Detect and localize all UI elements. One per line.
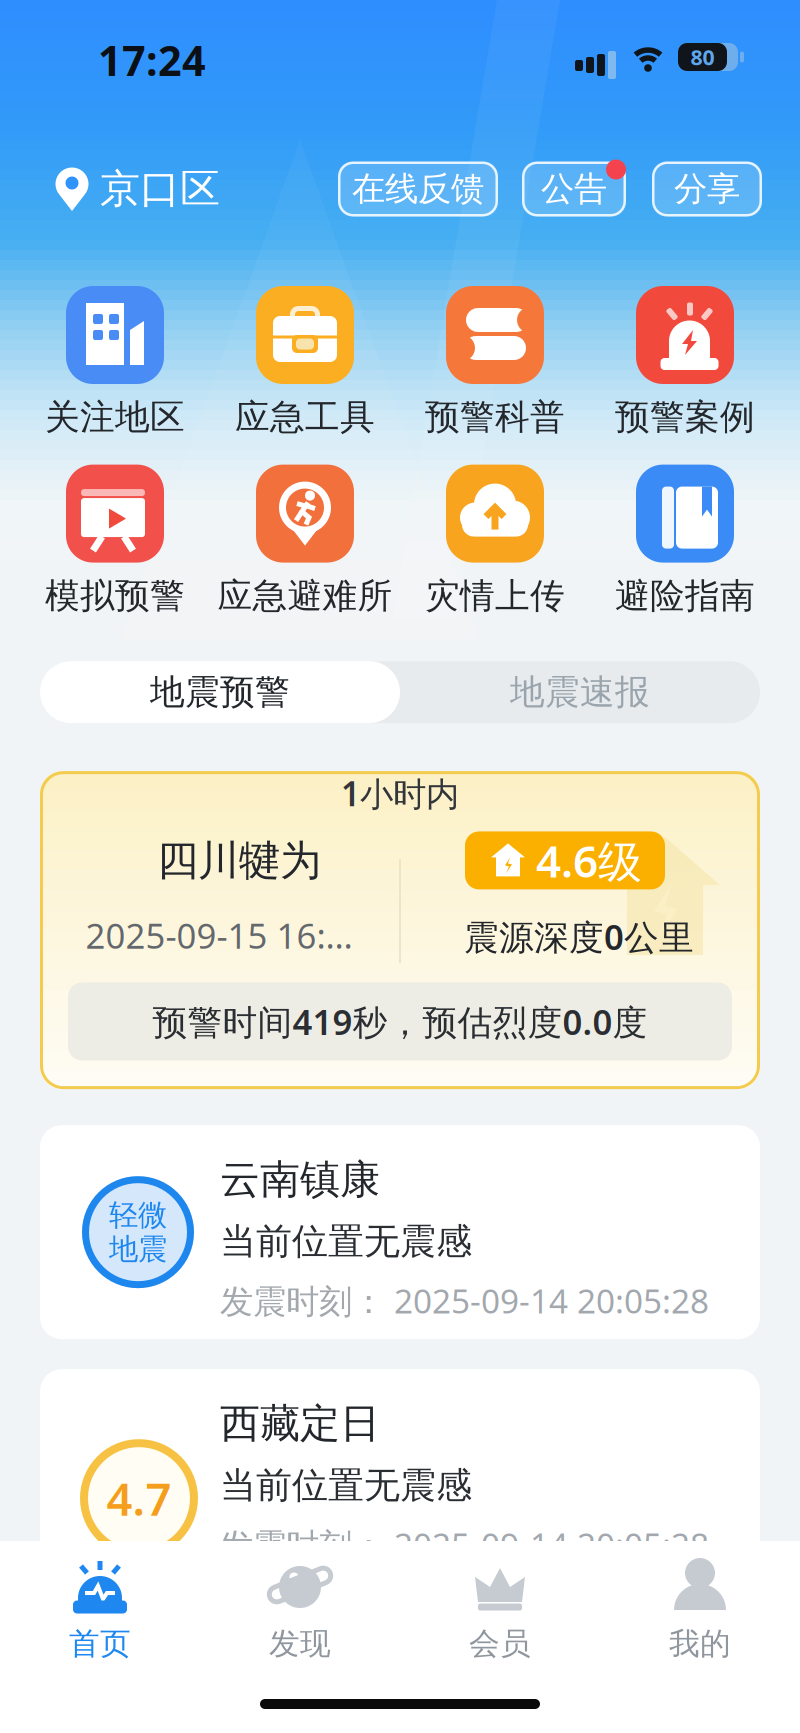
button[interactable]: 地震速报 [400, 661, 760, 723]
staticText: 2025-09-15 16:... [85, 912, 352, 958]
staticText: 关注地区 [45, 396, 185, 439]
button[interactable]: 应急避难所 [210, 465, 400, 617]
button[interactable]: 4.7 [40, 1369, 760, 1583]
staticText: 发震时刻： 2025-09-14 20:05:28 [220, 1278, 709, 1323]
staticText: 预警案例 [615, 396, 755, 439]
staticText: 会员 [469, 1625, 531, 1663]
staticText: 模拟预警 [45, 575, 185, 617]
staticText: 预警科普 [425, 396, 565, 439]
staticText: 地震速报 [510, 671, 650, 713]
staticText: 灾情上传 [425, 575, 565, 617]
staticText: 公告 [541, 168, 607, 209]
staticText: 云南镇康 [220, 1155, 380, 1204]
staticText: 四川犍为 [157, 835, 321, 886]
staticText: 应急避难所 [217, 575, 392, 617]
staticText: 首页 [69, 1625, 131, 1663]
staticText: 震源深度0公里 [464, 913, 694, 959]
button[interactable]: 预警案例 [590, 286, 780, 439]
button[interactable]: 应急工具 [210, 286, 400, 439]
button[interactable]: 地震预警 [40, 661, 400, 723]
staticText: 17:24 [98, 33, 206, 87]
button[interactable]: 避险指南 [590, 465, 780, 617]
staticText: 在线反馈 [352, 168, 484, 209]
staticText: 应急工具 [235, 396, 375, 439]
button[interactable]: 首页 [0, 1541, 200, 1663]
button[interactable]: 在线反馈 [338, 161, 498, 216]
staticText: 轻微 [109, 1197, 167, 1233]
staticText: 当前位置无震感 [220, 1463, 472, 1507]
staticText: 1小时内 [341, 771, 459, 815]
staticText: 分享 [674, 168, 740, 209]
staticText: 地震 [109, 1231, 167, 1267]
staticText: 我的 [669, 1625, 731, 1663]
staticText: 当前位置无震感 [220, 1219, 472, 1263]
button[interactable]: 分享 [652, 161, 762, 216]
staticText: 京口区 [100, 164, 220, 213]
button[interactable]: 灾情上传 [400, 465, 590, 617]
button[interactable]: 轻微 [40, 1125, 760, 1339]
staticText: 4.6级 [536, 831, 642, 890]
staticText: 发现 [269, 1625, 331, 1663]
button[interactable]: 模拟预警 [20, 465, 210, 617]
staticText: 避险指南 [615, 575, 755, 617]
button[interactable]: 预警科普 [400, 286, 590, 439]
button[interactable]: 1小时内 [40, 771, 760, 1089]
staticText: 发震时刻： 2025-09-14 20:05:28 [220, 1522, 709, 1567]
button[interactable]: 公告 [522, 161, 626, 216]
staticText: 4.7 [106, 1468, 171, 1528]
staticText: 80 [690, 43, 714, 71]
button[interactable]: 发现 [200, 1541, 400, 1663]
button[interactable]: 我的 [600, 1541, 800, 1663]
button[interactable]: 关注地区 [20, 286, 210, 439]
staticText: 西藏定日 [220, 1399, 380, 1448]
staticText: 预警时间419秒，预估烈度0.0度 [152, 998, 647, 1044]
button[interactable]: 会员 [400, 1541, 600, 1663]
staticText: 地震预警 [150, 671, 290, 713]
